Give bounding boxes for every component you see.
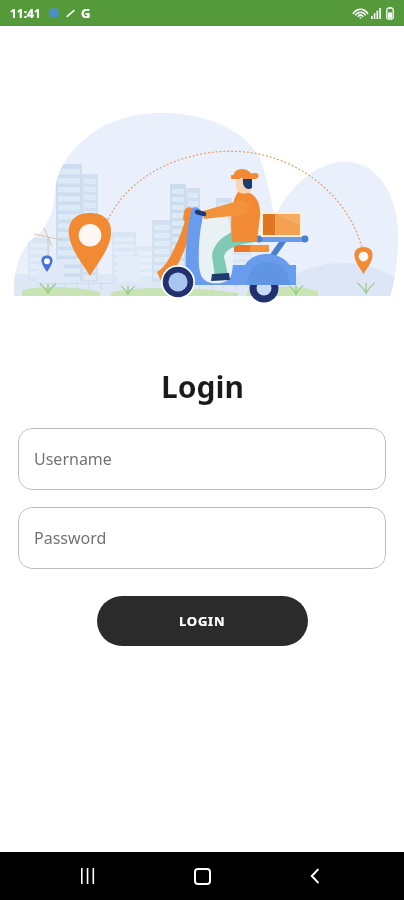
button[interactable]: Username [18,428,386,490]
staticText: G [81,4,91,22]
button[interactable]: Recents [65,852,113,900]
staticText: 11:41 [10,5,41,21]
button[interactable]: LOGIN [97,596,308,646]
staticText: Username [34,448,112,470]
staticText: Login [161,366,244,407]
button[interactable]: Back [291,852,339,900]
button[interactable]: Home [178,852,226,900]
staticText: Password [34,527,107,549]
button[interactable]: Password [18,507,386,569]
staticText: LOGIN [179,612,226,630]
